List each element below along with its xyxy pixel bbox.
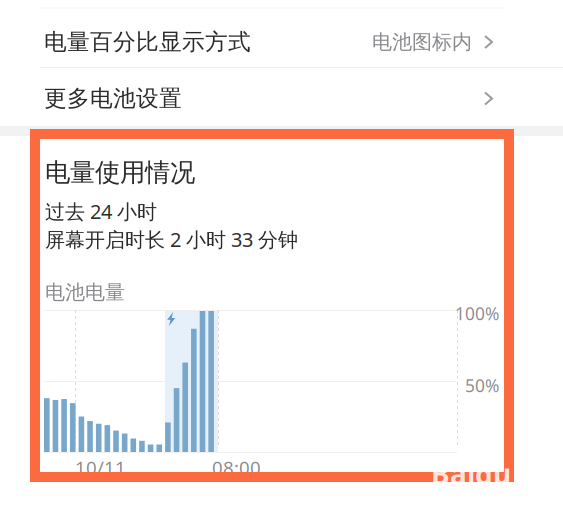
staticText: 屏幕开启时长 2 小时 33 分钟 bbox=[45, 226, 298, 253]
staticText: 过去 24 小时 bbox=[45, 198, 157, 225]
staticText: 100% bbox=[455, 302, 499, 325]
staticText: 50% bbox=[465, 374, 499, 397]
staticText: 电量使用情况 bbox=[45, 157, 195, 188]
staticText: 10/11 bbox=[75, 455, 126, 480]
staticText: 更多电池设置 bbox=[44, 85, 182, 112]
staticText: 电池电量 bbox=[45, 280, 125, 305]
staticText: 电池图标内 bbox=[372, 30, 472, 54]
button[interactable]: 电量百分比显示方式 bbox=[0, 13, 563, 71]
staticText: Baidu 经验 bbox=[431, 455, 546, 506]
staticText: jingyan.baidu.com bbox=[432, 477, 555, 506]
button[interactable]: 更多电池设置 bbox=[0, 71, 563, 126]
staticText: 电量百分比显示方式 bbox=[44, 28, 251, 56]
staticText: 08:00 bbox=[212, 455, 261, 480]
